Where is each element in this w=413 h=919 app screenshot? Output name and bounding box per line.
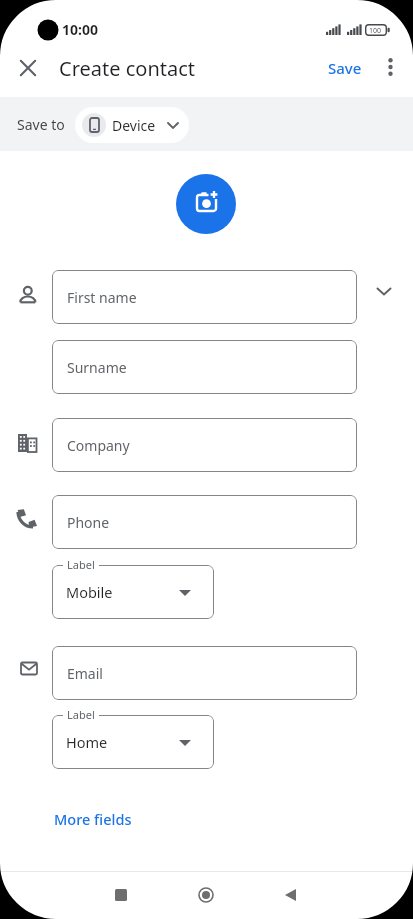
button[interactable]: First name [52, 270, 357, 324]
staticText: Email [67, 664, 103, 683]
staticText: Device [112, 116, 156, 135]
button[interactable] [378, 55, 402, 79]
button[interactable]: Mobile [52, 565, 214, 619]
staticText: Surname [67, 358, 127, 377]
staticText: 100 [369, 26, 382, 36]
button[interactable]: More fields [40, 803, 146, 835]
staticText: Save to [17, 115, 65, 134]
staticText: Label [67, 557, 95, 572]
button[interactable] [103, 877, 139, 913]
staticText: Phone [67, 513, 110, 532]
button[interactable]: Phone [52, 495, 357, 549]
staticText: Company [67, 436, 130, 455]
button[interactable] [272, 877, 308, 913]
button[interactable]: Surname [52, 340, 357, 394]
staticText: More fields [54, 809, 132, 829]
button[interactable]: Save [322, 53, 368, 83]
button[interactable] [15, 55, 41, 81]
button[interactable] [371, 278, 397, 304]
button[interactable]: Email [52, 646, 357, 700]
button[interactable]: Home [52, 715, 214, 769]
staticText: Mobile [66, 582, 113, 602]
staticText: 10:00 [62, 20, 98, 39]
staticText: Home [66, 732, 108, 752]
staticText: First name [67, 288, 137, 307]
button[interactable] [188, 877, 224, 913]
button[interactable]: Company [52, 418, 357, 472]
staticText: Label [67, 707, 95, 722]
staticText: Create contact [59, 55, 196, 82]
staticText: Save [328, 58, 362, 78]
button[interactable]: Device [75, 107, 189, 143]
button[interactable] [176, 174, 236, 234]
